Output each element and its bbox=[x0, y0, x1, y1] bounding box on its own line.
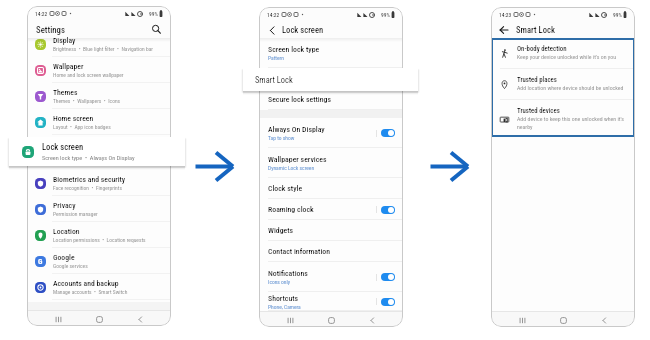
staticText: Wallpaper services bbox=[268, 155, 327, 164]
staticText: Lock screen bbox=[282, 25, 324, 35]
staticText: Home screen bbox=[53, 114, 94, 123]
staticText: Accounts and backup bbox=[53, 279, 119, 288]
staticText: 14:22 bbox=[35, 11, 48, 17]
button[interactable]: Screen lock type bbox=[259, 38, 403, 68]
button[interactable]: Recents bbox=[283, 313, 297, 327]
button[interactable]: Clock style bbox=[259, 178, 403, 199]
staticText: 99% bbox=[149, 11, 158, 17]
button[interactable]: Trusted devices bbox=[491, 100, 635, 137]
button[interactable] bbox=[381, 273, 395, 281]
staticText: Privacy bbox=[53, 201, 76, 210]
staticText: 14:23 bbox=[499, 12, 512, 18]
staticText: Location bbox=[53, 227, 80, 236]
staticText: Permission manager bbox=[53, 211, 98, 217]
button[interactable]: Back bbox=[498, 24, 510, 36]
button[interactable]: Widgets bbox=[259, 220, 403, 241]
staticText: Smart Lock bbox=[268, 74, 304, 83]
button[interactable] bbox=[381, 129, 395, 137]
staticText: On-body detection bbox=[517, 45, 567, 53]
button[interactable]: Trusted places bbox=[491, 69, 635, 99]
staticText: Themes bbox=[53, 88, 78, 97]
button[interactable]: Back bbox=[266, 24, 278, 36]
staticText: Settings bbox=[36, 25, 65, 35]
staticText: Themes • Wallpapers • Icons bbox=[53, 98, 121, 104]
staticText: Tap to show bbox=[268, 135, 295, 141]
button[interactable] bbox=[381, 206, 395, 214]
button[interactable]: Back bbox=[133, 312, 147, 326]
staticText: Google bbox=[53, 253, 75, 262]
staticText: Notifications bbox=[268, 269, 308, 278]
staticText: Trusted places bbox=[517, 76, 557, 84]
staticText: Shortcuts bbox=[268, 294, 299, 303]
button[interactable]: Themes bbox=[27, 83, 171, 109]
staticText: Brightness • Blue light filter • Navigat… bbox=[53, 46, 153, 52]
staticText: 99% bbox=[381, 12, 390, 18]
staticText: Clock style bbox=[268, 184, 303, 193]
button[interactable] bbox=[381, 298, 395, 306]
staticText: Location permissions • Location requests bbox=[53, 237, 146, 243]
staticText: Lock screen bbox=[42, 142, 84, 152]
button[interactable]: Location bbox=[27, 222, 171, 248]
staticText: Roaming clock bbox=[268, 205, 314, 214]
staticText: Screen lock type bbox=[268, 45, 320, 54]
button[interactable]: On-body detection bbox=[491, 38, 635, 68]
button[interactable]: Wallpaper services bbox=[259, 148, 403, 178]
button[interactable]: Privacy bbox=[27, 196, 171, 222]
staticText: Home and lock screen wallpaper bbox=[53, 72, 124, 78]
staticText: Widgets bbox=[268, 226, 294, 235]
staticText: Keep your device unlocked while it's on … bbox=[517, 54, 616, 61]
button[interactable]: Home bbox=[556, 313, 570, 327]
button[interactable]: Always On Display bbox=[259, 118, 403, 148]
staticText: G bbox=[38, 257, 43, 266]
staticText: Always On Display bbox=[268, 125, 325, 134]
staticText: 99% bbox=[613, 12, 622, 18]
staticText: Screen lock type • Always On Display bbox=[42, 154, 135, 161]
button[interactable]: Wallpaper bbox=[27, 57, 171, 83]
button[interactable]: Lock screen bbox=[9, 137, 185, 166]
button[interactable]: Secure lock settings bbox=[259, 89, 403, 110]
button[interactable]: Roaming clock bbox=[259, 199, 403, 220]
button[interactable]: Back bbox=[597, 313, 611, 327]
button[interactable]: G bbox=[27, 248, 171, 274]
staticText: Contact information bbox=[268, 247, 330, 256]
button[interactable]: Smart Lock bbox=[243, 68, 418, 91]
button[interactable]: Shortcuts bbox=[259, 292, 403, 311]
staticText: Icons only bbox=[268, 279, 291, 285]
staticText: Lock screen bbox=[53, 140, 90, 149]
staticText: Dynamic Lock screen bbox=[268, 165, 315, 171]
button[interactable]: Home screen bbox=[27, 109, 171, 135]
button[interactable]: Smart Lock bbox=[259, 68, 403, 89]
staticText: Add location where device should be unlo… bbox=[517, 85, 624, 92]
button[interactable]: Biometrics and security bbox=[27, 170, 171, 196]
staticText: Layout • App icon badges bbox=[53, 124, 111, 130]
staticText: 14:22 bbox=[267, 12, 280, 18]
staticText: Face recognition • Fingerprints bbox=[53, 185, 122, 191]
button[interactable]: Accounts and backup bbox=[27, 274, 171, 300]
staticText: Google services bbox=[53, 263, 88, 269]
button[interactable]: Recents bbox=[51, 312, 65, 326]
staticText: Biometrics and security bbox=[53, 175, 126, 184]
button[interactable]: Search bbox=[150, 23, 163, 36]
staticText: Pattern bbox=[268, 55, 284, 61]
button[interactable]: Back bbox=[365, 313, 379, 327]
staticText: Smart Lock bbox=[255, 75, 293, 85]
button[interactable]: Recents bbox=[515, 313, 529, 327]
staticText: Smart Lock bbox=[516, 25, 555, 35]
staticText: Display bbox=[53, 36, 76, 45]
staticText: Secure lock settings bbox=[268, 95, 332, 104]
button[interactable]: Contact information bbox=[259, 241, 403, 262]
button[interactable]: Lock screen bbox=[27, 135, 171, 161]
staticText: Trusted devices bbox=[517, 107, 560, 115]
staticText: Manage accounts • Smart Switch bbox=[53, 289, 128, 295]
button[interactable]: Display bbox=[27, 31, 171, 57]
staticText: Phone, Camera bbox=[268, 304, 301, 310]
staticText: Wallpaper bbox=[53, 62, 84, 71]
button[interactable]: Home bbox=[324, 313, 338, 327]
staticText: Add device to keep this one unlocked whe… bbox=[517, 116, 630, 130]
button[interactable]: Notifications bbox=[259, 262, 403, 292]
button[interactable]: Home bbox=[92, 312, 106, 326]
